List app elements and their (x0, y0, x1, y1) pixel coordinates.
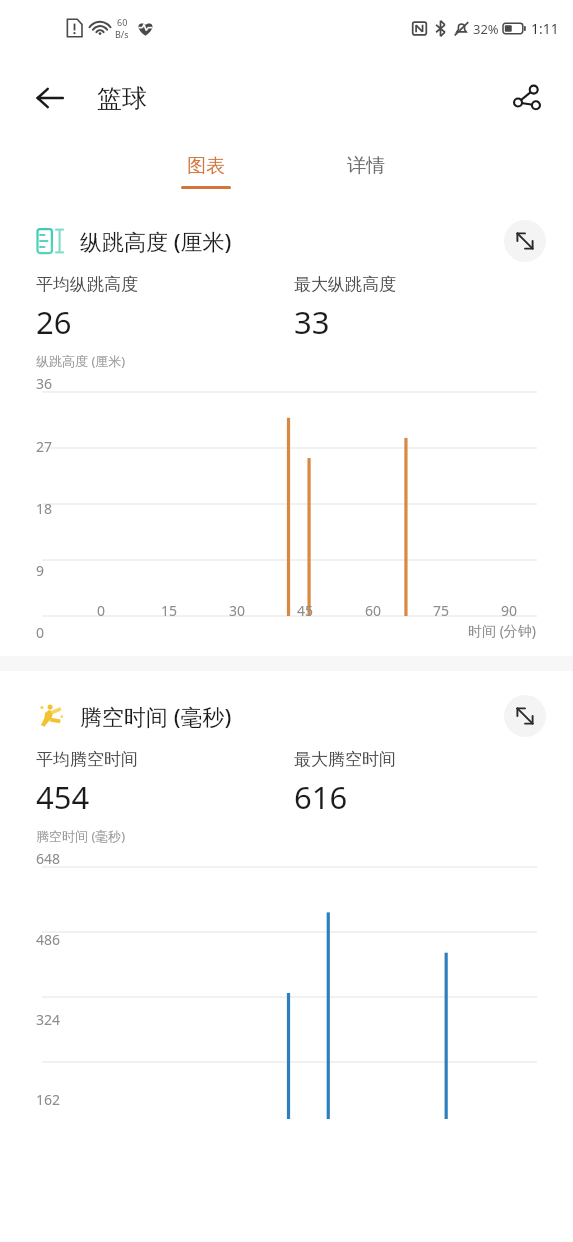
staticText: 32% (473, 20, 499, 38)
staticText: 0 (97, 601, 106, 620)
staticText: 平均腾空时间 (36, 749, 138, 770)
button[interactable]: 详情 (331, 140, 401, 204)
button[interactable]: 图表 (171, 140, 241, 204)
staticText: 腾空时间 (毫秒) (36, 827, 126, 845)
staticText: 30 (229, 601, 246, 620)
button[interactable]: Expand chart (504, 220, 546, 262)
staticText: 0 (36, 623, 45, 642)
staticText: 45 (297, 601, 314, 620)
staticText: 36 (36, 374, 53, 393)
staticText: 454 (36, 776, 90, 818)
staticText: 详情 (347, 154, 385, 178)
staticText: 15 (161, 601, 178, 620)
staticText: 648 (36, 849, 61, 868)
staticText: 最大腾空时间 (294, 749, 396, 770)
staticText: 腾空时间 (毫秒) (80, 701, 232, 731)
staticText: 9 (36, 561, 45, 580)
staticText: 324 (36, 1010, 61, 1029)
staticText: 60 (365, 601, 382, 620)
staticText: 最大纵跳高度 (294, 274, 396, 295)
staticText: 27 (36, 437, 53, 456)
staticText: 75 (433, 601, 450, 620)
staticText: 26 (36, 301, 72, 343)
staticText: 18 (36, 499, 53, 518)
button[interactable]: Share (503, 74, 551, 122)
staticText: 纵跳高度 (厘米) (36, 352, 126, 370)
staticText: 486 (36, 930, 61, 949)
staticText: 162 (36, 1090, 61, 1109)
staticText: 平均纵跳高度 (36, 274, 138, 295)
staticText: 篮球 (97, 83, 147, 114)
staticText: B/s (115, 28, 129, 40)
staticText: 616 (294, 776, 348, 818)
button[interactable]: Expand chart (504, 695, 546, 737)
staticText: 纵跳高度 (厘米) (80, 226, 232, 256)
staticText: 图表 (187, 154, 225, 178)
staticText: 时间 (分钟) (468, 621, 537, 640)
staticText: 1:11 (531, 19, 559, 38)
staticText: 60 (117, 16, 128, 28)
staticText: 33 (294, 301, 330, 343)
button[interactable]: Back (26, 74, 74, 122)
staticText: 90 (501, 601, 518, 620)
